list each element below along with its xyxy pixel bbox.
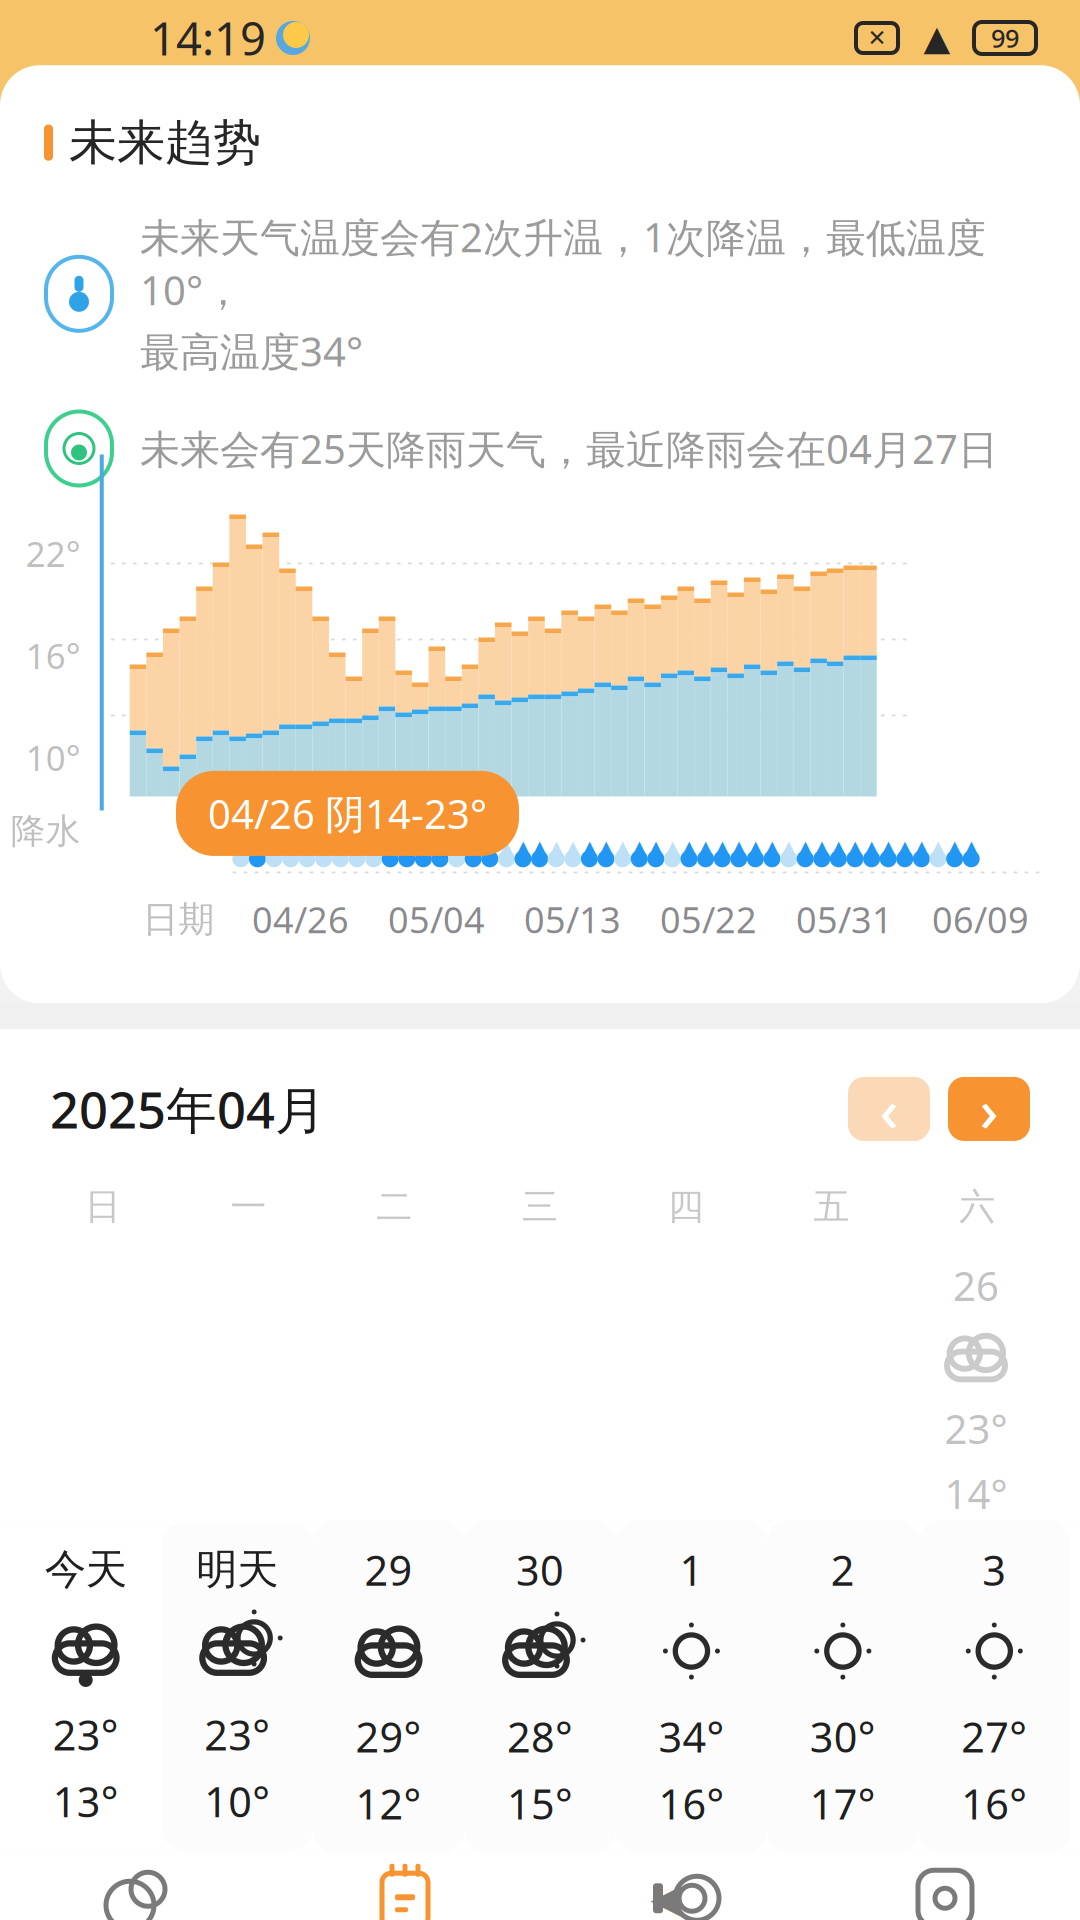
staticText: ▲ bbox=[501, 838, 512, 854]
staticText: ▲ bbox=[667, 838, 678, 854]
button[interactable]: 30 bbox=[464, 1520, 616, 1853]
staticText: ▲ bbox=[883, 838, 894, 854]
button[interactable]: 下一月 bbox=[948, 1077, 1030, 1141]
staticText: 12° bbox=[356, 1776, 422, 1831]
staticText: 最高温度34° bbox=[140, 324, 363, 377]
staticText: ▲ bbox=[650, 838, 661, 854]
staticText: ▲ bbox=[600, 838, 611, 854]
staticText: 99 bbox=[991, 21, 1019, 55]
staticText: 23° bbox=[944, 1402, 1007, 1455]
staticText: 2 bbox=[831, 1542, 855, 1597]
staticText: 1 bbox=[679, 1542, 703, 1597]
staticText: ▲ bbox=[833, 838, 844, 854]
staticText: 三 bbox=[522, 1185, 558, 1229]
button[interactable]: 45日天气 bbox=[270, 1850, 540, 1920]
button[interactable]: 3 bbox=[919, 1520, 1070, 1853]
button[interactable]: ◀ bbox=[540, 1852, 810, 1920]
staticText: ▲ bbox=[634, 838, 645, 854]
staticText: 04/26 阴14-23° bbox=[208, 787, 487, 840]
staticText: 16° bbox=[961, 1776, 1027, 1831]
staticText: 14:19 bbox=[150, 8, 266, 68]
button[interactable]: 上一月 bbox=[848, 1077, 930, 1141]
staticText: 日期 bbox=[142, 897, 214, 941]
staticText: ▲ bbox=[899, 838, 910, 854]
button[interactable]: 29 bbox=[313, 1520, 464, 1853]
staticText: ▲ bbox=[923, 18, 950, 58]
staticText: 34° bbox=[658, 1709, 724, 1764]
staticText: ▲ bbox=[517, 838, 528, 854]
staticText: ‹ bbox=[879, 1070, 898, 1148]
button[interactable]: 2 bbox=[767, 1520, 918, 1853]
staticText: ▲ bbox=[484, 838, 495, 854]
staticText: 四 bbox=[668, 1185, 704, 1229]
staticText: ▲ bbox=[584, 838, 595, 854]
staticText: ▲ bbox=[816, 838, 827, 854]
staticText: 29 bbox=[365, 1542, 413, 1597]
staticText: ▲ bbox=[766, 838, 777, 854]
staticText: 26 bbox=[953, 1259, 999, 1312]
staticText: 22° bbox=[26, 530, 81, 576]
staticText: 28° bbox=[507, 1709, 573, 1764]
staticText: 降水 bbox=[11, 810, 81, 852]
staticText: 29° bbox=[356, 1709, 422, 1764]
button[interactable]: 明天 bbox=[161, 1522, 313, 1851]
staticText: ▲ bbox=[849, 838, 860, 854]
staticText: ✕ bbox=[867, 25, 886, 51]
staticText: 05/13 bbox=[524, 895, 621, 943]
staticText: ▲ bbox=[783, 838, 794, 854]
button[interactable]: 今天 bbox=[10, 1522, 161, 1851]
staticText: 六 bbox=[959, 1185, 995, 1229]
staticText: ▲ bbox=[683, 838, 694, 854]
staticText: 未来趋势 bbox=[69, 113, 261, 172]
staticText: 10° bbox=[204, 1774, 270, 1829]
staticText: 10° bbox=[26, 735, 81, 781]
staticText: 3 bbox=[982, 1542, 1006, 1597]
staticText: 日 bbox=[85, 1185, 121, 1229]
staticText: › bbox=[979, 1070, 998, 1148]
staticText: 16° bbox=[658, 1776, 724, 1831]
staticText: 今天 bbox=[45, 1544, 127, 1595]
staticText: 05/04 bbox=[388, 895, 485, 943]
staticText: ◀ bbox=[650, 1876, 681, 1920]
staticText: 14° bbox=[944, 1467, 1007, 1520]
staticText: 15° bbox=[507, 1776, 573, 1831]
button[interactable]: 我的 bbox=[810, 1852, 1080, 1920]
staticText: 17° bbox=[810, 1776, 876, 1831]
staticText: ▲ bbox=[750, 838, 761, 854]
staticText: 2025年04月 bbox=[50, 1075, 326, 1143]
staticText: 未来天气温度会有2次升温，1次降温，最低温度10°， bbox=[140, 210, 986, 316]
staticText: 16° bbox=[26, 632, 81, 678]
staticText: ▲ bbox=[800, 838, 811, 854]
staticText: ▲ bbox=[932, 838, 943, 854]
staticText: ▲ bbox=[534, 838, 545, 854]
staticText: 二 bbox=[376, 1185, 412, 1229]
staticText: ▲ bbox=[617, 838, 628, 854]
button[interactable]: 综合预报 bbox=[0, 1852, 270, 1920]
staticText: 23° bbox=[204, 1707, 270, 1762]
staticText: 未来会有25天降雨天气，最近降雨会在04月27日 bbox=[140, 422, 998, 475]
staticText: ▲ bbox=[966, 838, 977, 854]
staticText: ▲ bbox=[551, 838, 562, 854]
button[interactable]: 1 bbox=[616, 1520, 767, 1853]
staticText: 一 bbox=[231, 1185, 267, 1229]
staticText: 05/31 bbox=[796, 895, 893, 943]
staticText: 30° bbox=[810, 1709, 876, 1764]
staticText: ▲ bbox=[700, 838, 711, 854]
staticText: 27° bbox=[961, 1709, 1027, 1764]
